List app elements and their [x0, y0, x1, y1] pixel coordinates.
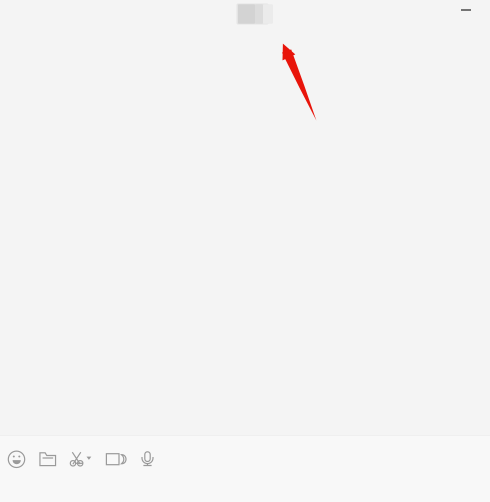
button[interactable]: Attach file [35, 445, 61, 473]
button[interactable]: Minimize [449, 0, 483, 22]
button[interactable]: Voice message [134, 444, 160, 472]
button[interactable]: Video call [103, 445, 129, 473]
button[interactable]: Screen clipping [65, 445, 95, 473]
button[interactable]: Emoji [3, 445, 29, 473]
